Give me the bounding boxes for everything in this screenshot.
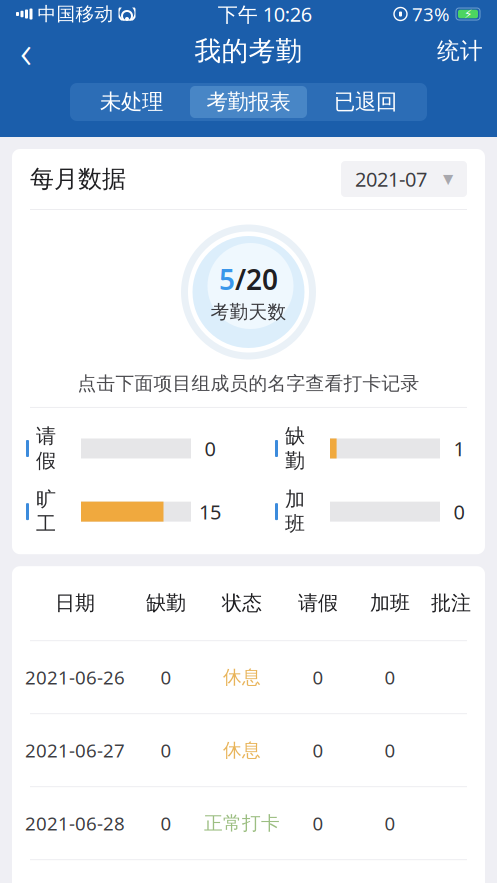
staticText: 正常打卡 (204, 812, 280, 835)
staticText: 0 (384, 738, 395, 763)
button[interactable]: 2021-07 (341, 161, 467, 197)
staticText: ▼ (443, 171, 453, 186)
staticText: 休息 (223, 739, 261, 762)
staticText: 未处理 (100, 89, 163, 115)
staticText: 缺勤 (146, 591, 186, 615)
staticText: 已退回 (334, 89, 397, 115)
staticText: 0 (384, 811, 395, 836)
staticText: 0 (312, 811, 323, 836)
staticText: 0 (160, 665, 171, 690)
staticText: 请假 (36, 424, 56, 473)
staticText: 中国移动 (37, 2, 113, 25)
button[interactable]: 2021-06-28 (12, 787, 485, 859)
staticText: 状态 (222, 591, 262, 615)
staticText: 2021-07 (355, 166, 427, 192)
staticText: 0 (312, 738, 323, 763)
staticText: ‹ (20, 21, 32, 81)
button[interactable]: 考勤报表 (190, 86, 307, 118)
staticText: 考勤报表 (206, 89, 290, 115)
staticText: 每月数据 (30, 164, 126, 194)
staticText: 统计 (437, 37, 483, 65)
staticText: 下午 10:26 (218, 1, 312, 27)
staticText: 加班 (285, 487, 305, 536)
staticText: 考勤天数 (210, 301, 286, 323)
staticText: 2021-06-27 (25, 738, 125, 763)
staticText: 2021-06-28 (25, 811, 125, 836)
staticText: 加班 (370, 591, 410, 615)
staticText: /20 (235, 260, 278, 298)
button[interactable]: 已退回 (307, 86, 424, 118)
button[interactable]: 未处理 (73, 86, 190, 118)
staticText: 15 (199, 498, 221, 525)
button[interactable]: 2021-06-26 (12, 641, 485, 713)
staticText: 0 (160, 811, 171, 836)
staticText: 缺勤 (285, 424, 305, 473)
button[interactable]: 返回 (0, 29, 52, 73)
staticText: 1 (453, 435, 464, 462)
button[interactable]: 统计 (423, 29, 497, 73)
staticText: 休息 (223, 666, 261, 689)
staticText: 5 (219, 260, 235, 298)
staticText: 批注 (431, 591, 471, 615)
staticText: 0 (384, 665, 395, 690)
staticText: 点击下面项目组成员的名字查看打卡记录 (77, 372, 419, 395)
staticText: 0 (160, 738, 171, 763)
staticText: 旷工 (36, 487, 56, 536)
staticText: 73% (412, 2, 450, 26)
staticText: 日期 (55, 591, 95, 615)
staticText: 0 (204, 435, 215, 462)
staticText: ⚡︎ (464, 7, 472, 21)
staticText: 我的考勤 (194, 35, 302, 67)
button[interactable]: 2021-06-27 (12, 714, 485, 786)
staticText: 0 (453, 498, 464, 525)
staticText: 2021-06-26 (25, 665, 125, 690)
staticText: 请假 (298, 591, 338, 615)
staticText: 0 (312, 665, 323, 690)
